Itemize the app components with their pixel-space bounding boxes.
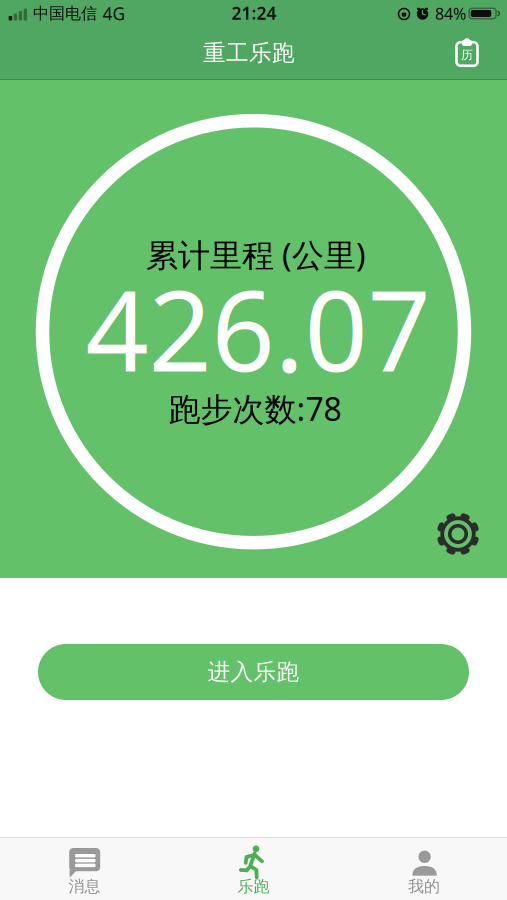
staticText: 中国电信 — [33, 4, 97, 23]
button[interactable]: 历史记录 — [453, 36, 481, 68]
staticText: 426.07 — [85, 255, 430, 402]
staticText: 累计里程 (公里) — [146, 233, 366, 276]
button[interactable]: 乐跑 — [193, 837, 313, 900]
staticText: 历 — [461, 48, 473, 62]
staticText: 乐跑 — [237, 877, 269, 896]
staticText: 21:24 — [231, 1, 276, 24]
button[interactable]: 设置 — [435, 511, 481, 557]
staticText: 进入乐跑 — [207, 658, 299, 686]
button[interactable]: 我的 — [362, 837, 482, 900]
staticText: 跑步次数:78 — [168, 387, 341, 430]
staticText: 4G — [102, 2, 125, 25]
staticText: 重工乐跑 — [203, 39, 295, 67]
button[interactable]: 进入乐跑 — [38, 644, 469, 700]
staticText: 84% — [435, 3, 466, 24]
staticText: 消息 — [68, 877, 100, 896]
staticText: 我的 — [408, 877, 440, 896]
button[interactable]: 消息 — [24, 837, 144, 900]
